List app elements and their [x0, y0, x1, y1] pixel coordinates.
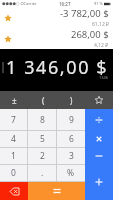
staticText: 268,00 $ — [71, 28, 109, 41]
staticText: ●●●●○ OCarrier — [2, 1, 37, 6]
button[interactable]: Favorites — [85, 91, 113, 109]
staticText: 1 — [11, 150, 16, 162]
button[interactable]: . — [28, 165, 56, 181]
button[interactable]: ( — [29, 91, 57, 109]
staticText: 4 — [11, 133, 16, 145]
staticText: ± — [12, 95, 17, 106]
button[interactable]: Add — [85, 164, 113, 200]
button[interactable]: ) — [57, 91, 85, 109]
button[interactable]: ± — [0, 91, 29, 109]
staticText: 0 — [11, 167, 16, 179]
button[interactable]: 2 — [28, 148, 56, 164]
button[interactable]: 1 — [0, 148, 27, 164]
button[interactable]: 6 — [57, 131, 85, 147]
button[interactable]: 7 — [0, 109, 27, 130]
staticText: 91 % — [94, 1, 103, 6]
staticText: 6 — [69, 133, 74, 145]
staticText: 8 — [40, 114, 45, 126]
staticText: -3 782,00 $ — [60, 7, 109, 20]
staticText: 16:27 — [59, 1, 71, 7]
button[interactable]: Multiply — [85, 130, 113, 147]
button[interactable]: 0 — [0, 165, 27, 181]
staticText: 4,12 ₽ — [94, 42, 109, 49]
button[interactable]: 4 — [0, 131, 27, 147]
button[interactable]: % — [57, 165, 85, 181]
button[interactable]: Delete — [0, 182, 28, 200]
staticText: 5 — [40, 133, 45, 145]
staticText: . — [41, 167, 44, 179]
button[interactable]: Divide — [85, 109, 113, 130]
button[interactable]: 3 — [57, 148, 85, 164]
staticText: ( — [42, 95, 45, 106]
staticText: 2 — [40, 150, 45, 162]
staticText: 61,12 ₽ — [92, 21, 109, 28]
button[interactable]: 5 — [28, 131, 56, 147]
button[interactable]: 9 — [57, 109, 85, 130]
staticText: 1 346,00 $ — [6, 55, 109, 80]
staticText: ) — [70, 95, 73, 106]
button[interactable]: -3 782,00 $ — [0, 7, 113, 28]
button[interactable]: Subtract — [85, 147, 113, 164]
button[interactable]: 268,00 $ — [0, 28, 113, 49]
button[interactable]: Equals — [28, 182, 85, 200]
staticText: 1346 — [99, 75, 109, 80]
staticText: 7 — [11, 114, 16, 126]
button[interactable]: 8 — [28, 109, 56, 130]
staticText: % — [67, 167, 75, 179]
staticText: 9 — [69, 114, 74, 126]
staticText: 3 — [69, 150, 74, 162]
